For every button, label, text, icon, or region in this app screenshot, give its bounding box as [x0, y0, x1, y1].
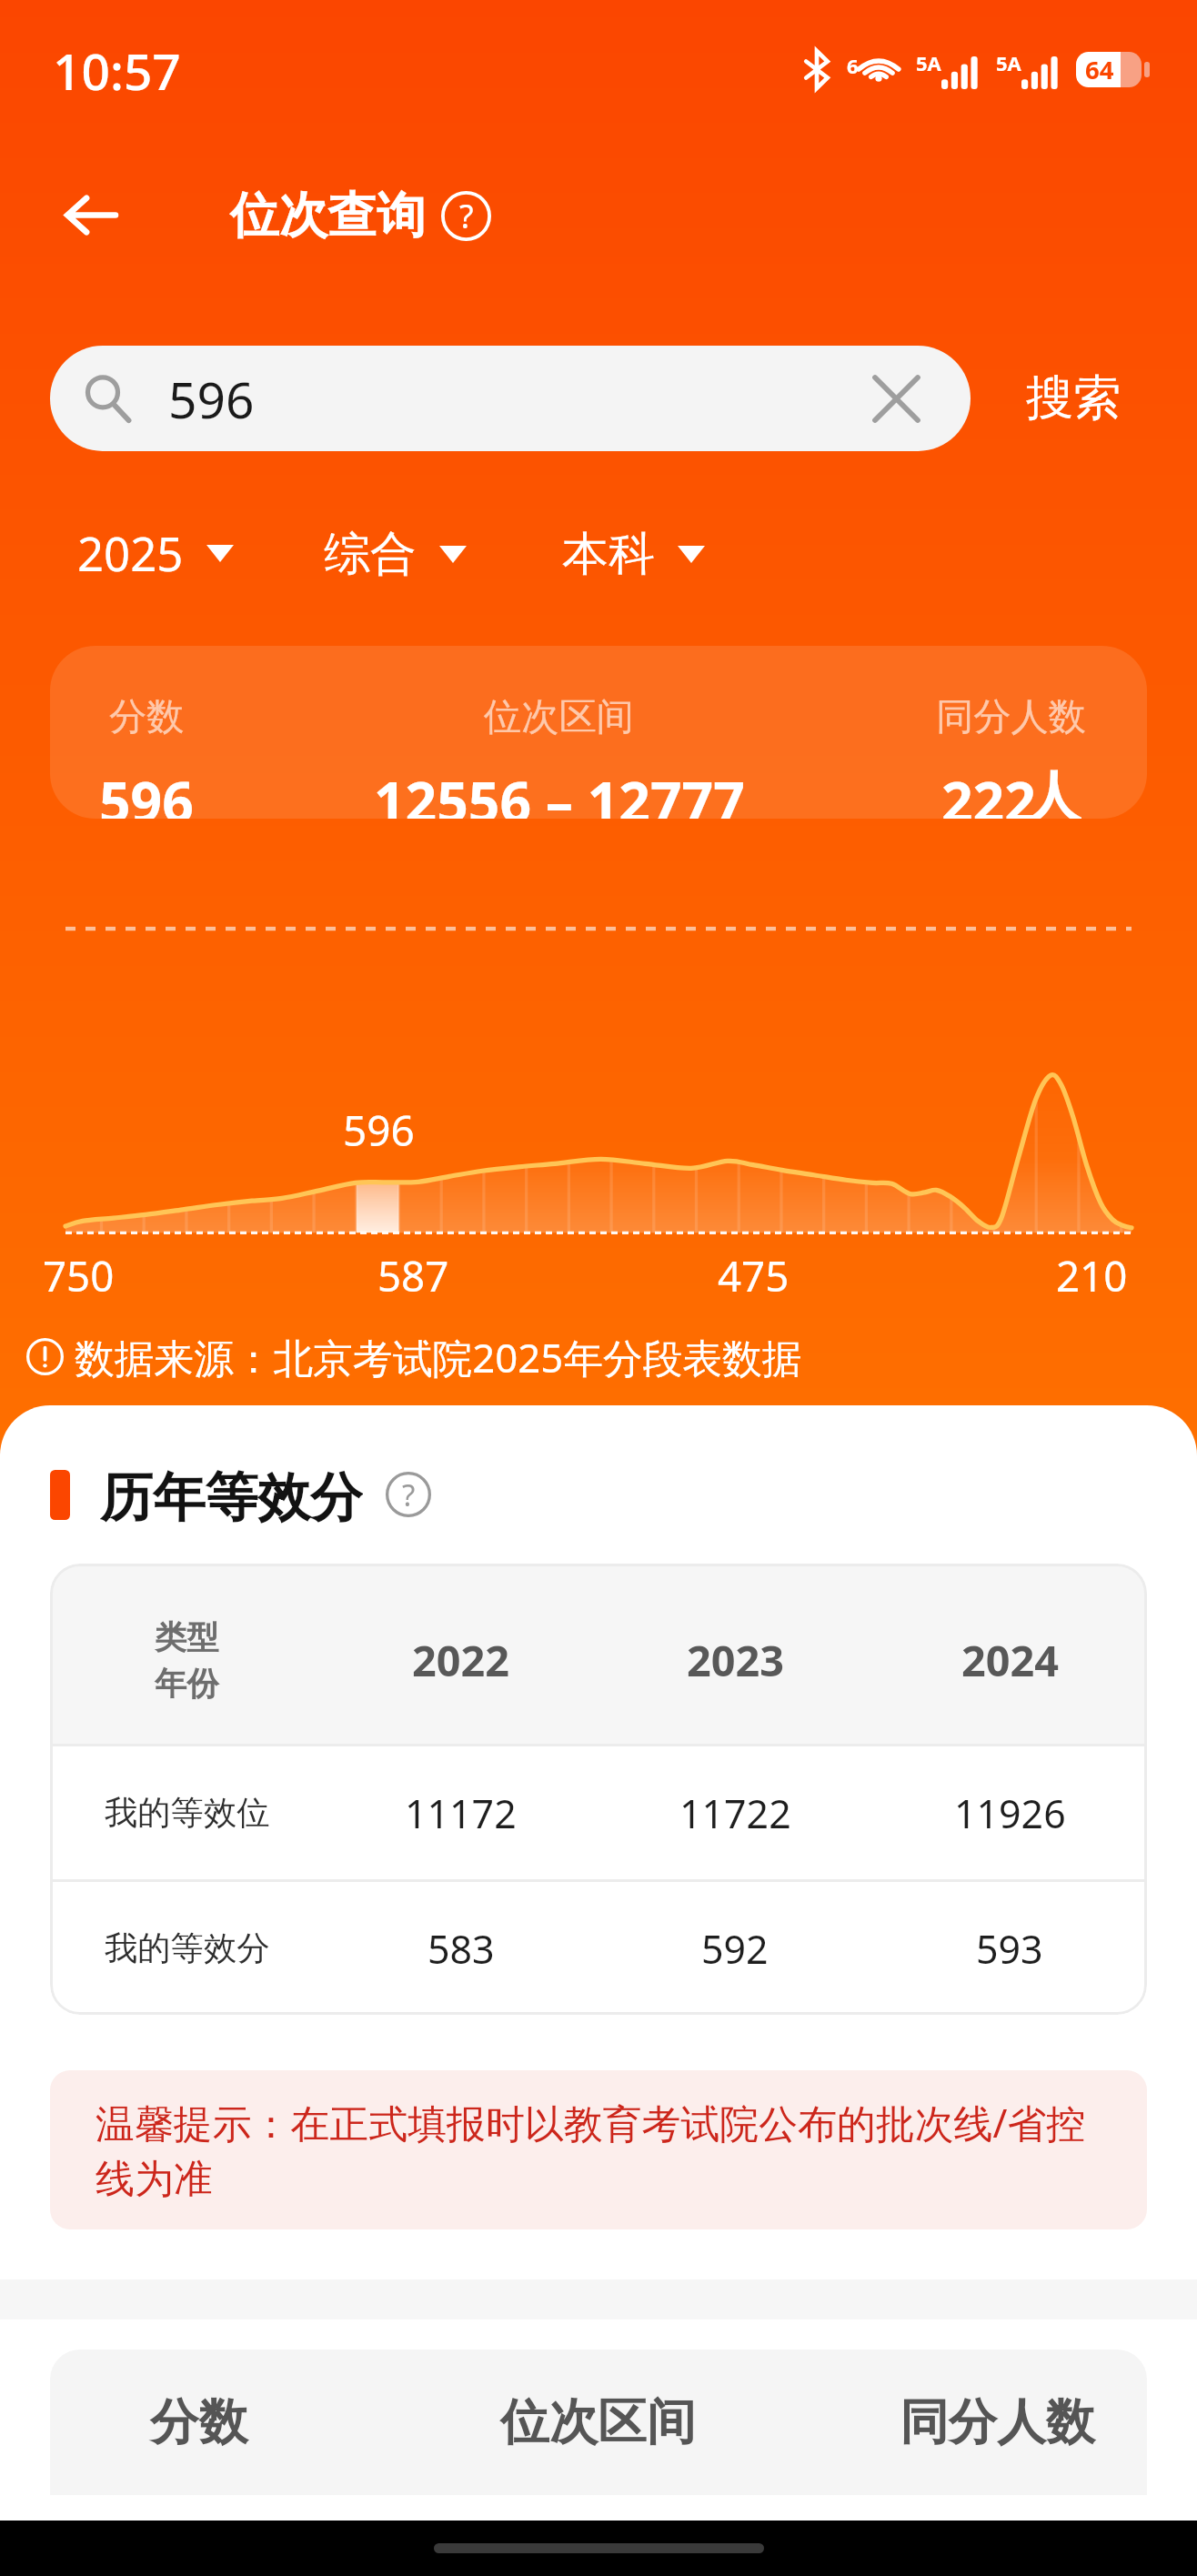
- staticText: 11172: [405, 1786, 517, 1839]
- staticText: 2022: [412, 1631, 509, 1689]
- staticText: 596: [343, 1102, 415, 1159]
- staticText: 人: [1026, 763, 1081, 819]
- staticText: 596: [168, 365, 255, 433]
- button[interactable]: Clear: [865, 367, 928, 430]
- button[interactable]: 搜索: [971, 348, 1122, 448]
- staticText: 分数: [109, 693, 185, 740]
- staticText: 位次区间: [500, 2391, 696, 2453]
- staticText: 我的等效分: [105, 1927, 270, 1969]
- staticText: 6: [847, 52, 859, 79]
- button[interactable]: 2025: [77, 507, 234, 600]
- staticText: 12556 – 12777: [374, 763, 745, 819]
- staticText: 222: [941, 763, 1036, 819]
- staticText: 2025: [77, 522, 184, 585]
- staticText: 类型: [155, 1617, 219, 1657]
- staticText: 210: [1056, 1247, 1128, 1303]
- staticText: 同分人数: [900, 2391, 1095, 2453]
- staticText: 2023: [687, 1631, 784, 1689]
- staticText: 位次查询: [230, 185, 426, 247]
- button[interactable]: 综合: [324, 509, 467, 599]
- staticText: 11926: [954, 1786, 1066, 1839]
- staticText: 搜索: [1026, 368, 1122, 428]
- staticText: 596: [99, 763, 194, 819]
- staticText: 温馨提示：在正式填报时以教育考试院公布的批次线/省控线为准: [96, 2096, 1101, 2204]
- staticText: 年份: [155, 1664, 219, 1704]
- staticText: 分数: [150, 2391, 248, 2453]
- staticText: 位次区间: [484, 693, 634, 740]
- staticText: 11722: [679, 1786, 791, 1839]
- staticText: 592: [701, 1922, 769, 1975]
- staticText: 10:57: [53, 36, 181, 105]
- button[interactable]: 596: [50, 346, 971, 451]
- staticText: 583: [427, 1922, 495, 1975]
- staticText: ?: [459, 194, 474, 238]
- staticText: 593: [976, 1922, 1043, 1975]
- staticText: 2024: [961, 1631, 1059, 1689]
- staticText: 我的等效位: [105, 1792, 270, 1834]
- staticText: 5A: [996, 49, 1021, 76]
- staticText: 数据来源：北京考试院2025年分段表数据: [75, 1330, 802, 1384]
- button[interactable]: 本科: [562, 509, 705, 599]
- button[interactable]: Back: [35, 160, 146, 270]
- staticText: 64: [1085, 53, 1114, 86]
- staticText: 5A: [916, 49, 941, 76]
- staticText: 历年等效分: [100, 1464, 363, 1524]
- staticText: 本科: [562, 525, 655, 583]
- staticText: 同分人数: [936, 693, 1086, 740]
- staticText: 587: [377, 1247, 449, 1303]
- staticText: ?: [402, 1474, 416, 1515]
- staticText: 750: [43, 1247, 115, 1303]
- staticText: 475: [718, 1247, 790, 1303]
- staticText: 综合: [324, 525, 417, 583]
